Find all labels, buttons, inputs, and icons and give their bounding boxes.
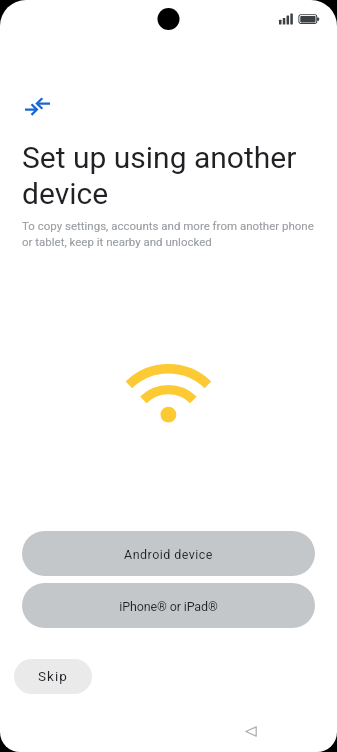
button[interactable]: Skip: [14, 659, 92, 694]
staticText: Skip: [38, 668, 68, 684]
button[interactable]: Back: [240, 720, 262, 742]
button[interactable]: iPhone® or iPad®: [22, 583, 315, 628]
staticText: iPhone® or iPad®: [119, 599, 218, 614]
button[interactable]: Android device: [22, 531, 315, 576]
staticText: To copy settings, accounts and more from…: [22, 219, 314, 249]
staticText: Set up using another device: [22, 140, 312, 211]
staticText: Android device: [124, 547, 213, 562]
